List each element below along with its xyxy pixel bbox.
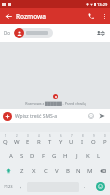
button[interactable]: Dodaj załącznik — [3, 112, 12, 121]
button[interactable]: 6 — [55, 132, 66, 148]
button[interactable]: S — [16, 148, 27, 163]
button[interactable]: Dodaj kontakt — [94, 27, 106, 39]
button[interactable]: 1 — [0, 132, 11, 148]
button[interactable]: 5 — [44, 132, 55, 148]
button[interactable]: 3 — [22, 132, 33, 148]
button[interactable]: A — [5, 148, 16, 163]
staticText: V — [55, 167, 59, 175]
staticText: E — [26, 138, 30, 146]
staticText: 0 — [104, 134, 106, 138]
button[interactable]: Wpisz treść SMS-a — [15, 113, 86, 120]
staticText: K — [86, 152, 90, 160]
button[interactable]: C — [40, 163, 51, 178]
staticText: P — [103, 138, 107, 146]
staticText: I — [81, 138, 84, 146]
button[interactable]: Wyślij — [90, 180, 110, 193]
staticText: 1 — [5, 134, 7, 138]
staticText: D — [30, 152, 35, 160]
staticText: 8 — [82, 134, 84, 138]
button[interactable]: 2 — [11, 132, 22, 148]
button[interactable]: 8 — [77, 132, 88, 148]
staticText: Do — [4, 30, 11, 36]
staticText: O — [91, 138, 96, 146]
button[interactable]: M — [84, 163, 95, 178]
staticText: 5 — [49, 134, 51, 138]
button[interactable]: 7 — [66, 132, 77, 148]
staticText: 2 — [16, 134, 18, 138]
button[interactable]: Więcej opcji — [98, 10, 110, 22]
button[interactable]: D — [27, 148, 38, 163]
button[interactable]: K — [82, 148, 93, 163]
button[interactable]: B — [62, 163, 73, 178]
staticText: H — [63, 152, 68, 160]
button[interactable]: J — [71, 148, 82, 163]
staticText: R — [37, 138, 41, 146]
staticText: M — [87, 167, 93, 175]
staticText: X — [32, 167, 36, 175]
button[interactable]: , — [16, 180, 26, 193]
staticText: U — [69, 138, 74, 146]
staticText: Rozmowa z ██████ - Przed chwilą — [25, 101, 86, 106]
button[interactable]: 0 — [99, 132, 110, 148]
button[interactable]: Z — [16, 163, 28, 178]
button[interactable]: 4 — [33, 132, 44, 148]
staticText: 7 — [71, 134, 73, 138]
button[interactable]: Zadzwoń — [84, 9, 98, 23]
staticText: C — [44, 167, 48, 175]
staticText: . — [84, 183, 86, 190]
button[interactable]: Wstecz — [0, 8, 16, 24]
button[interactable]: Emotikony — [86, 111, 96, 121]
staticText: N — [76, 167, 81, 175]
staticText: 6 — [60, 134, 62, 138]
staticText: G — [52, 152, 57, 160]
staticText: 3 — [27, 134, 29, 138]
button[interactable]: Backspace — [95, 163, 110, 178]
button[interactable]: F — [38, 148, 49, 163]
staticText: F — [42, 152, 46, 160]
staticText: ?123 — [4, 184, 13, 189]
staticText: W — [14, 138, 20, 146]
staticText: Rozmowa — [16, 12, 47, 21]
button[interactable]: G — [49, 148, 60, 163]
button[interactable]: Spacja — [27, 180, 79, 193]
staticText: J — [76, 152, 78, 160]
staticText: Z — [20, 167, 24, 175]
staticText: , — [20, 183, 22, 190]
staticText: 9 — [93, 134, 95, 138]
button[interactable]: V — [51, 163, 62, 178]
button[interactable]: N — [73, 163, 84, 178]
staticText: T — [48, 138, 52, 146]
button[interactable]: 9 — [88, 132, 99, 148]
staticText: Q — [3, 138, 8, 146]
button[interactable]: . — [80, 180, 90, 193]
button[interactable]: Wyślij — [97, 111, 107, 121]
button[interactable] — [14, 28, 53, 38]
staticText: 4 — [38, 134, 40, 138]
staticText: Wpisz treść SMS-a — [15, 113, 58, 120]
staticText: B — [66, 167, 70, 175]
button[interactable]: Shift — [0, 163, 16, 178]
staticText: Y — [59, 138, 63, 146]
staticText: S — [20, 152, 24, 160]
staticText: A — [9, 152, 13, 160]
button[interactable]: H — [60, 148, 71, 163]
button[interactable]: X — [28, 163, 40, 178]
staticText: L — [97, 152, 101, 160]
button[interactable]: ?123 — [0, 180, 16, 193]
staticText: 13:29 — [97, 2, 108, 7]
button[interactable]: L — [93, 148, 104, 163]
